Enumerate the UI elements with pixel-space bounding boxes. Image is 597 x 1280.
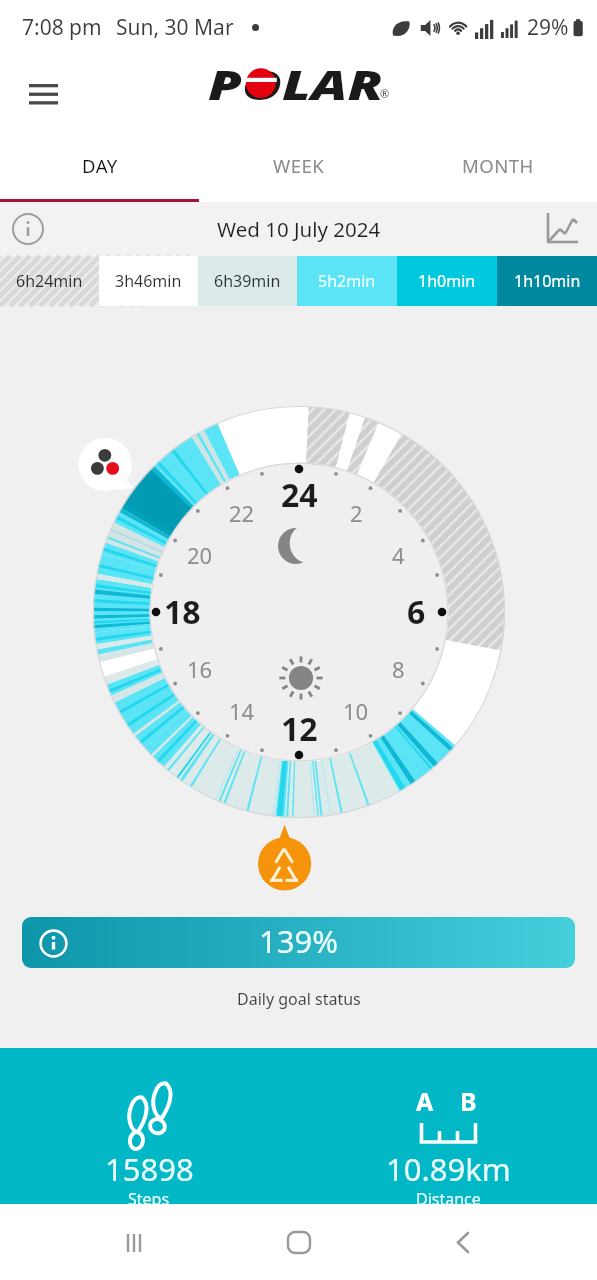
staticText: MONTH — [462, 153, 534, 178]
staticText: Distance — [416, 1188, 481, 1210]
button[interactable]: Recents — [104, 1212, 164, 1272]
staticText: 10 — [343, 696, 369, 726]
button[interactable]: Home — [269, 1212, 329, 1272]
button[interactable]: MONTH — [398, 130, 597, 202]
staticText: 4 — [392, 540, 405, 570]
button[interactable]: 139% — [22, 917, 575, 968]
button[interactable]: 6h39min — [198, 256, 297, 306]
staticText: 20 — [187, 540, 213, 570]
staticText: Sun, 30 Mar — [116, 13, 234, 42]
staticText: 1h10min — [514, 270, 581, 292]
button[interactable]: WEEK — [199, 130, 398, 202]
staticText: 1h0min — [418, 270, 476, 292]
button[interactable]: 3h46min — [99, 256, 198, 306]
staticText: 29% — [527, 13, 569, 42]
staticText: Steps — [128, 1188, 170, 1210]
staticText: POLAR — [208, 57, 383, 111]
button[interactable]: 6h24min — [0, 256, 99, 306]
staticText: Wed 10 July 2024 — [217, 215, 381, 243]
staticText: ® — [380, 86, 390, 101]
staticText: 139% — [259, 920, 338, 962]
button[interactable]: Back — [433, 1212, 493, 1272]
staticText: 7:08 pm — [22, 13, 102, 42]
button[interactable]: 5h2min — [297, 256, 397, 306]
button[interactable]: 1h0min — [397, 256, 497, 306]
staticText: 6 — [407, 590, 426, 634]
button[interactable]: Chart — [541, 208, 583, 250]
button[interactable]: Info — [9, 210, 47, 248]
staticText: 10.89km — [386, 1148, 511, 1190]
staticText: 3h46min — [115, 270, 182, 292]
button[interactable]: A — [348, 1048, 548, 1204]
staticText: Daily goal status — [237, 988, 361, 1010]
staticText: 18 — [164, 590, 201, 634]
staticText: B — [460, 1084, 477, 1118]
staticText: 12 — [281, 707, 318, 751]
button[interactable]: 1h10min — [497, 256, 597, 306]
button[interactable]: Menu — [21, 69, 69, 117]
staticText: 14 — [229, 696, 255, 726]
staticText: 6h39min — [214, 270, 281, 292]
staticText: 24 — [281, 473, 318, 517]
button[interactable]: Training session — [254, 816, 316, 892]
button[interactable]: DAY — [0, 130, 199, 202]
staticText: 5h2min — [318, 270, 376, 292]
staticText: 8 — [392, 654, 405, 684]
staticText: 15898 — [105, 1148, 194, 1190]
staticText: WEEK — [273, 153, 325, 178]
button[interactable]: 15898 — [49, 1048, 249, 1204]
staticText: DAY — [82, 153, 118, 178]
staticText: 6h24min — [16, 270, 83, 292]
staticText: 2 — [350, 498, 363, 528]
button[interactable]: Activity info — [76, 435, 138, 497]
staticText: A — [416, 1084, 434, 1118]
staticText: 16 — [187, 654, 213, 684]
staticText: 22 — [229, 498, 255, 528]
